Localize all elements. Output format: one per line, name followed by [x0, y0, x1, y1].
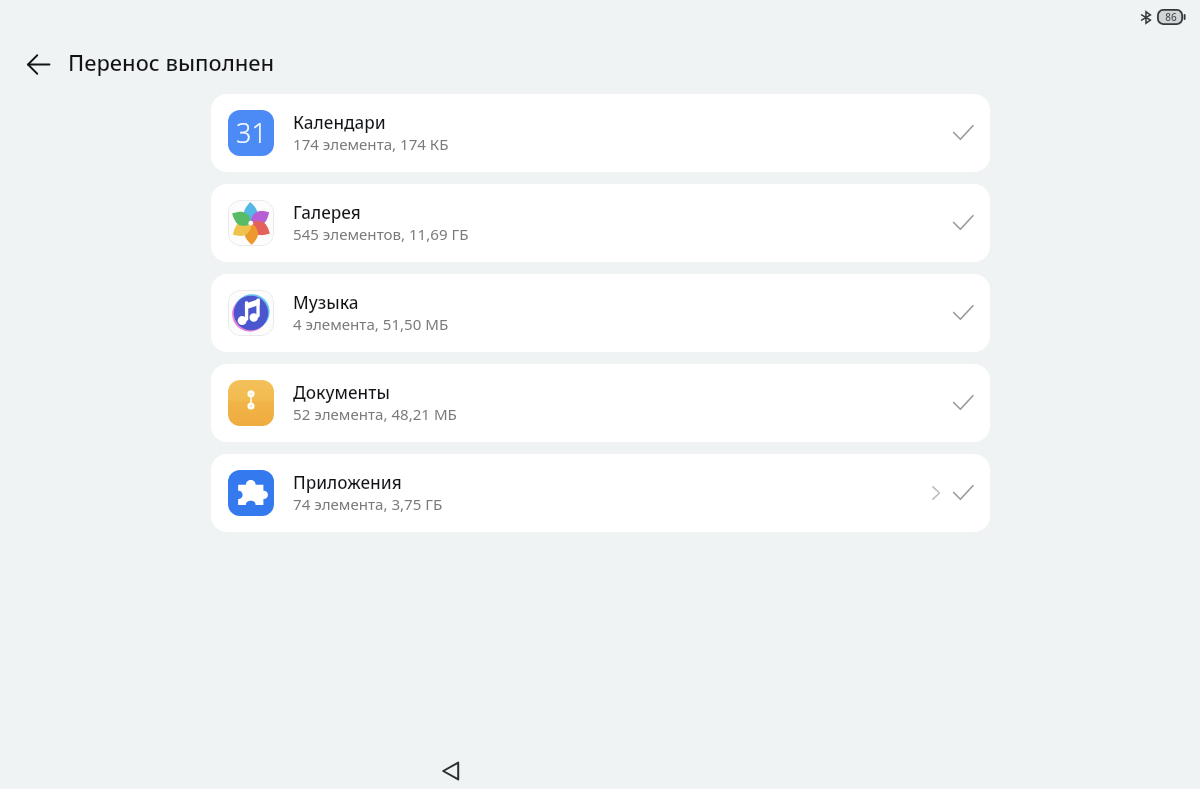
staticText: 545 элементов, 11,69 ГБ: [293, 224, 469, 245]
staticText: Календари: [293, 111, 386, 134]
button[interactable]: Back: [18, 44, 58, 84]
staticText: Галерея: [293, 201, 361, 224]
staticText: Перенос выполнен: [68, 48, 275, 78]
staticText: Документы: [293, 381, 390, 404]
button[interactable]: Show details: [925, 482, 947, 504]
staticText: 4 элемента, 51,50 МБ: [293, 314, 449, 335]
button[interactable]: 31: [211, 94, 990, 172]
staticText: 74 элемента, 3,75 ГБ: [293, 494, 443, 515]
button[interactable]: Галерея: [211, 184, 990, 262]
staticText: Музыка: [293, 291, 359, 314]
staticText: Приложения: [293, 471, 402, 494]
button[interactable]: Back: [431, 751, 471, 789]
staticText: 52 элемента, 48,21 МБ: [293, 404, 457, 425]
button[interactable]: Музыка: [211, 274, 990, 352]
button[interactable]: Приложения: [211, 454, 990, 532]
staticText: 31: [236, 114, 267, 151]
staticText: 174 элемента, 174 КБ: [293, 134, 449, 155]
button[interactable]: Документы: [211, 364, 990, 442]
staticText: 86: [1158, 10, 1184, 24]
